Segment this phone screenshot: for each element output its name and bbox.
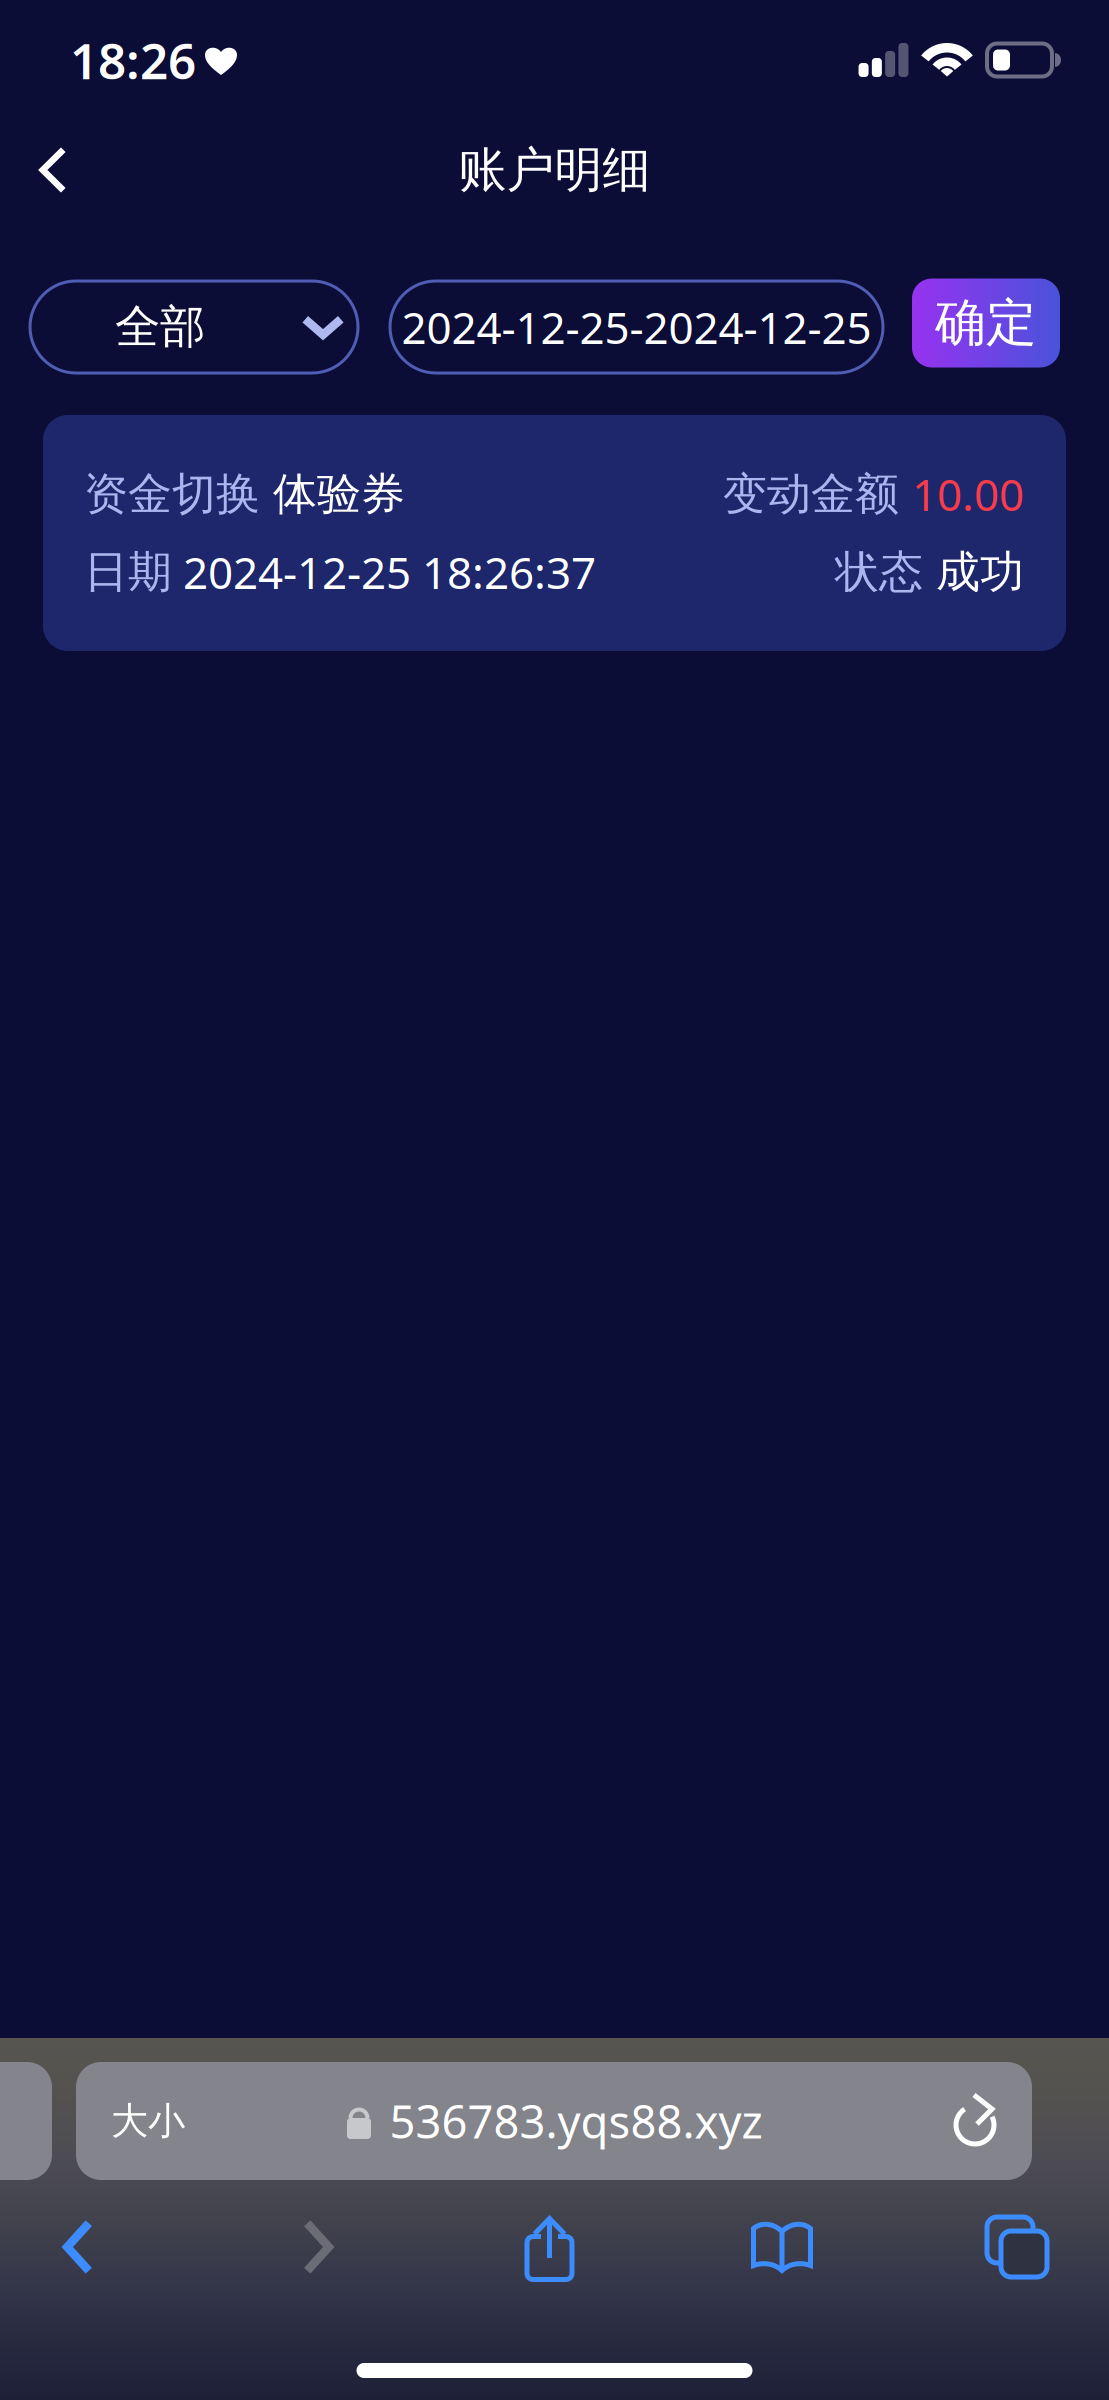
- staticText: 日期: [84, 545, 172, 599]
- button[interactable]: Bookmarks: [722, 2192, 842, 2302]
- button[interactable]: Back: [7, 124, 99, 216]
- staticText: 确定: [935, 292, 1037, 354]
- staticText: 资金切换: [84, 467, 260, 521]
- button[interactable]: 确定: [912, 282, 1060, 371]
- staticText: 账户明细: [458, 140, 650, 199]
- staticText: 2024-12-25 18:26:37: [172, 543, 596, 601]
- button[interactable]: Tabs: [957, 2192, 1077, 2302]
- button[interactable]: 2024-12-25-2024-12-25: [390, 281, 883, 373]
- staticText: 变动金额: [723, 467, 912, 521]
- staticText: 成功: [936, 545, 1024, 599]
- button[interactable]: Forward: [258, 2192, 378, 2302]
- button[interactable]: 全部: [30, 281, 358, 373]
- staticText: 状态: [835, 545, 936, 599]
- staticText: 全部: [115, 299, 205, 355]
- button[interactable]: 大小: [76, 2062, 1032, 2180]
- staticText: 体验券: [260, 467, 405, 521]
- button[interactable]: Back: [18, 2192, 138, 2302]
- staticText: 10.00: [912, 465, 1024, 523]
- button[interactable]: Share: [491, 2194, 611, 2304]
- staticText: 536783.yqs88.xyz: [389, 2091, 762, 2151]
- staticText: 2024-12-25-2024-12-25: [401, 298, 871, 356]
- staticText: 大小: [111, 2098, 185, 2144]
- staticText: 18:26: [70, 27, 196, 93]
